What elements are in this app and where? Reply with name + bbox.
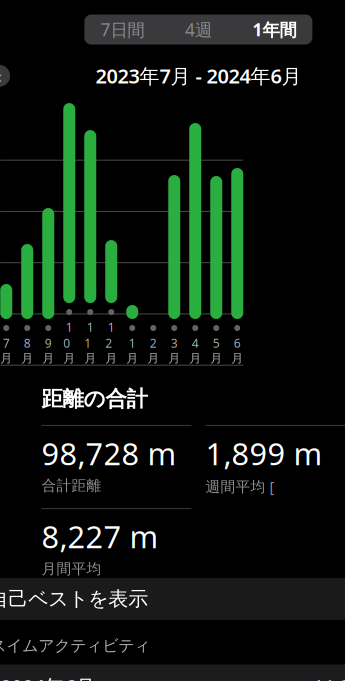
staticText: 5	[213, 335, 220, 351]
staticText: 11,300 m	[313, 673, 345, 681]
staticText: 1	[129, 335, 136, 351]
staticText: 8,227 m	[41, 516, 158, 557]
staticText: 2	[150, 335, 157, 351]
staticText: ‹	[0, 63, 2, 88]
button[interactable]: 自己ベストを表示	[0, 578, 345, 620]
staticText: 2月	[105, 335, 117, 366]
staticText: 1	[66, 319, 73, 335]
staticText: 月	[42, 351, 54, 366]
staticText: 1	[108, 319, 115, 335]
staticText: 月	[126, 351, 138, 366]
staticText: 月	[231, 351, 243, 366]
staticText: 0月	[63, 335, 75, 366]
staticText: 距離の合計	[41, 386, 147, 412]
staticText: 98,728 m	[41, 433, 176, 474]
staticText: 2023年7月 - 2024年6月	[95, 62, 301, 89]
staticText: 7日間	[100, 18, 144, 41]
staticText: 2024年6月	[0, 673, 95, 681]
staticText: 週間平均 [	[205, 477, 274, 496]
button[interactable]: 4週	[160, 15, 236, 43]
staticText: 4	[192, 335, 199, 351]
staticText: 9	[45, 335, 52, 351]
staticText: 自己ベストを表示	[0, 586, 148, 611]
staticText: 4週	[185, 18, 212, 41]
staticText: 月間平均	[41, 560, 101, 578]
staticText: スイムアクティビティ	[0, 636, 150, 655]
staticText: 1	[87, 319, 94, 335]
staticText: 合計距離	[41, 477, 101, 495]
staticText: 1月	[84, 335, 96, 366]
button[interactable]: 2024年6月	[0, 664, 345, 681]
staticText: 月	[189, 351, 201, 366]
staticText: 8	[24, 335, 31, 351]
staticText: 月	[147, 351, 159, 366]
staticText: 3	[171, 335, 178, 351]
staticText: 月	[210, 351, 222, 366]
staticText: 1,899 m	[205, 433, 322, 474]
staticText: 月	[21, 351, 33, 366]
staticText: 7	[3, 335, 10, 351]
staticText: 月	[0, 351, 12, 366]
staticText: 6	[234, 335, 241, 351]
button[interactable]: 1年間	[236, 15, 312, 43]
button[interactable]: Previous period	[0, 65, 10, 87]
button[interactable]: 7日間	[84, 15, 160, 43]
staticText: 1年間	[252, 18, 296, 41]
staticText: 月	[168, 351, 180, 366]
